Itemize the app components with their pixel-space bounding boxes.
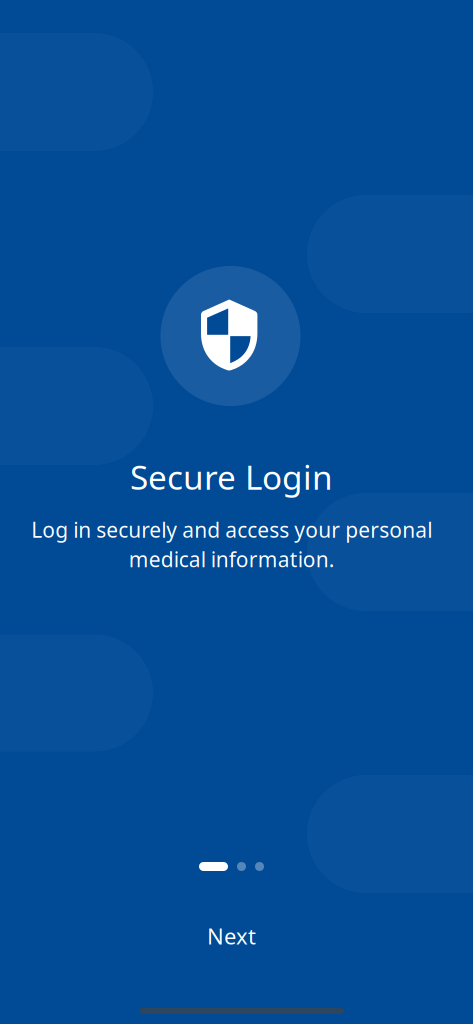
- button[interactable]: Page 2: [237, 862, 246, 871]
- button[interactable]: Page 3: [255, 862, 264, 871]
- button[interactable]: Page 1, current page: [199, 862, 228, 871]
- staticText: Next: [207, 921, 256, 951]
- button[interactable]: Next: [151, 914, 311, 958]
- staticText: Log in securely and access your personal…: [31, 515, 432, 573]
- staticText: Secure Login: [130, 454, 333, 499]
